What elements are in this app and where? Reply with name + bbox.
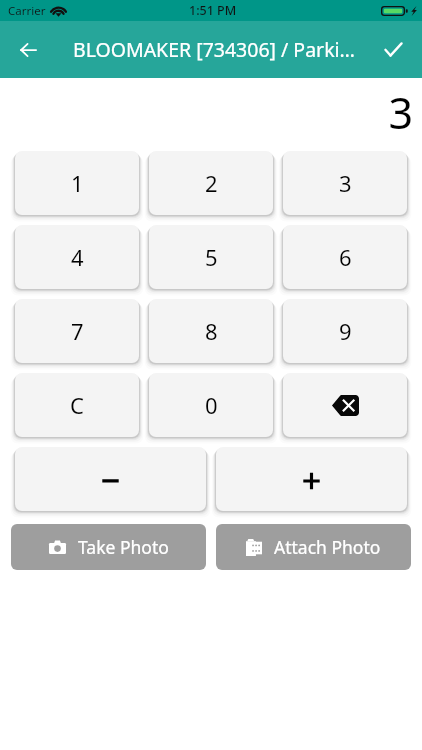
button[interactable]: 7: [15, 299, 139, 363]
staticText: 3: [388, 83, 413, 142]
button[interactable]: 1: [15, 151, 139, 215]
staticText: 5: [205, 242, 218, 272]
staticText: Carrier: [8, 3, 46, 19]
staticText: 2: [205, 168, 218, 198]
staticText: 6: [339, 242, 352, 272]
staticText: BLOOMAKER [734306] / Parki…: [73, 36, 356, 63]
staticText: 0: [205, 390, 218, 420]
button[interactable]: C: [15, 373, 139, 437]
staticText: 7: [71, 316, 84, 346]
button[interactable]: 9: [283, 299, 407, 363]
staticText: Attach Photo: [274, 535, 381, 559]
other: Backspace: [332, 395, 359, 416]
button[interactable]: Back: [9, 30, 48, 69]
other: Decrease: [102, 471, 119, 488]
button[interactable]: Backspace: [283, 373, 407, 437]
other: Increase: [303, 471, 320, 488]
button[interactable]: Decrease: [15, 447, 206, 511]
button[interactable]: 3: [283, 151, 407, 215]
button[interactable]: 4: [15, 225, 139, 289]
staticText: 1:51 PM: [189, 2, 237, 19]
staticText: 9: [339, 316, 352, 346]
button[interactable]: 5: [149, 225, 273, 289]
button[interactable]: Attach Photo: [216, 524, 411, 570]
button[interactable]: 0: [149, 373, 273, 437]
staticText: 3: [339, 168, 352, 198]
staticText: Take Photo: [78, 535, 169, 559]
staticText: 1: [71, 168, 84, 198]
button[interactable]: 2: [149, 151, 273, 215]
staticText: 8: [205, 316, 218, 346]
button[interactable]: Confirm: [374, 30, 413, 69]
staticText: C: [70, 390, 84, 420]
button[interactable]: 8: [149, 299, 273, 363]
button[interactable]: Take Photo: [11, 524, 206, 570]
button[interactable]: 6: [283, 225, 407, 289]
staticText: 4: [71, 242, 84, 272]
button[interactable]: Increase: [216, 447, 407, 511]
